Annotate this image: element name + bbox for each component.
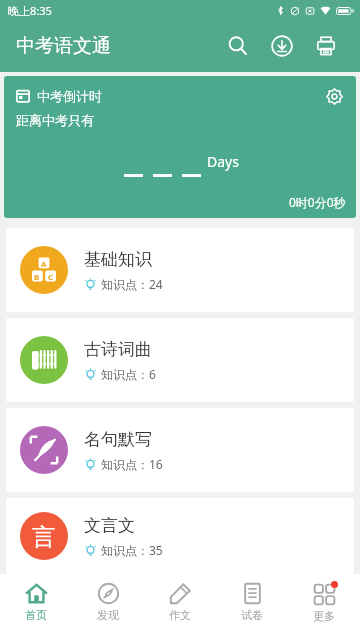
button[interactable]: Print bbox=[304, 24, 348, 68]
staticText: 知识点：35 bbox=[101, 542, 163, 558]
staticText: 发现 bbox=[97, 608, 119, 622]
button[interactable]: Search bbox=[216, 24, 260, 68]
staticText: 言 bbox=[32, 522, 56, 551]
staticText: 距离中考只有 bbox=[16, 112, 94, 128]
button[interactable]: Settings bbox=[320, 82, 348, 110]
staticText: B bbox=[34, 272, 40, 283]
button[interactable]: 发现 bbox=[72, 574, 144, 630]
staticText: 更多 bbox=[313, 609, 335, 623]
staticText: 作文 bbox=[169, 608, 191, 622]
button[interactable]: 名句默写 bbox=[6, 408, 354, 492]
staticText: 晚上8:35 bbox=[8, 3, 52, 18]
staticText: 首页 bbox=[25, 608, 47, 622]
staticText: 知识点：6 bbox=[101, 366, 156, 382]
staticText: A bbox=[41, 259, 47, 270]
staticText: 名句默写 bbox=[84, 429, 152, 450]
staticText: 中考倒计时 bbox=[37, 88, 102, 104]
staticText: 0时0分0秒 bbox=[289, 194, 346, 210]
button[interactable]: A bbox=[6, 228, 354, 312]
button[interactable]: 试卷 bbox=[216, 574, 288, 630]
staticText: 知识点：16 bbox=[101, 456, 163, 472]
button[interactable]: Download bbox=[260, 24, 304, 68]
button[interactable]: 首页 bbox=[0, 574, 72, 630]
button[interactable]: 古诗词曲 bbox=[6, 318, 354, 402]
button[interactable]: 中考倒计时 bbox=[4, 76, 356, 218]
staticText: Days bbox=[207, 152, 239, 171]
button[interactable]: 言 bbox=[6, 498, 354, 574]
staticText: 文言文 bbox=[84, 515, 135, 536]
button[interactable]: 作文 bbox=[144, 574, 216, 630]
staticText: 古诗词曲 bbox=[84, 339, 152, 360]
staticText: 试卷 bbox=[241, 608, 263, 622]
button[interactable]: 更多 bbox=[288, 574, 360, 630]
staticText: 知识点：24 bbox=[101, 276, 163, 292]
staticText: 基础知识 bbox=[84, 249, 152, 270]
staticText: C bbox=[48, 272, 54, 283]
staticText: 中考语文通 bbox=[16, 34, 111, 58]
